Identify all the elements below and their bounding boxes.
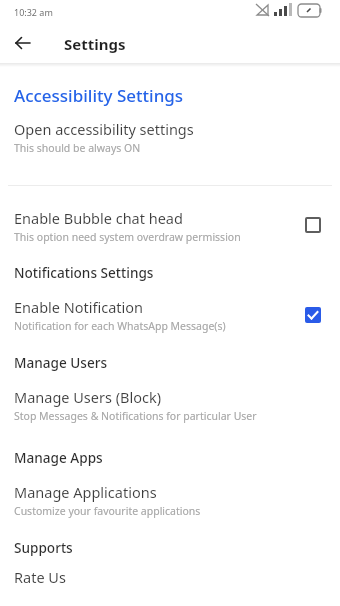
staticText: Supports — [14, 538, 73, 557]
staticText: Manage Apps — [14, 448, 103, 467]
staticText: Enable Notification — [14, 297, 144, 317]
button[interactable]: Rate Us — [0, 567, 340, 587]
staticText: This option need system overdraw permiss… — [14, 230, 241, 244]
button[interactable]: Open accessibility settings — [0, 119, 340, 155]
staticText: Customize your favourite applications — [14, 504, 201, 518]
staticText: Manage Users (Block) — [14, 387, 162, 407]
staticText: Enable Bubble chat head — [14, 208, 183, 228]
button[interactable] — [305, 217, 321, 233]
staticText: Notification for each WhatsApp Message(s… — [14, 319, 226, 333]
button[interactable]: Manage Users (Block) — [0, 387, 340, 423]
staticText: Settings — [64, 34, 126, 54]
button[interactable]: Enable Bubble chat head — [0, 208, 340, 244]
staticText: Manage Users — [14, 353, 108, 372]
staticText: Open accessibility settings — [14, 119, 194, 139]
staticText: Accessibility Settings — [14, 84, 184, 107]
staticText: Manage Applications — [14, 482, 157, 502]
button[interactable] — [305, 307, 321, 323]
button[interactable]: Enable Notification — [0, 297, 340, 333]
button[interactable]: Manage Applications — [0, 482, 340, 518]
staticText: 10:32 am — [14, 6, 53, 18]
staticText: Rate Us — [14, 567, 66, 587]
staticText: This should be always ON — [14, 141, 141, 155]
button[interactable] — [8, 28, 38, 58]
staticText: Stop Messages & Notifications for partic… — [14, 409, 257, 423]
staticText: Notifications Settings — [14, 263, 154, 282]
